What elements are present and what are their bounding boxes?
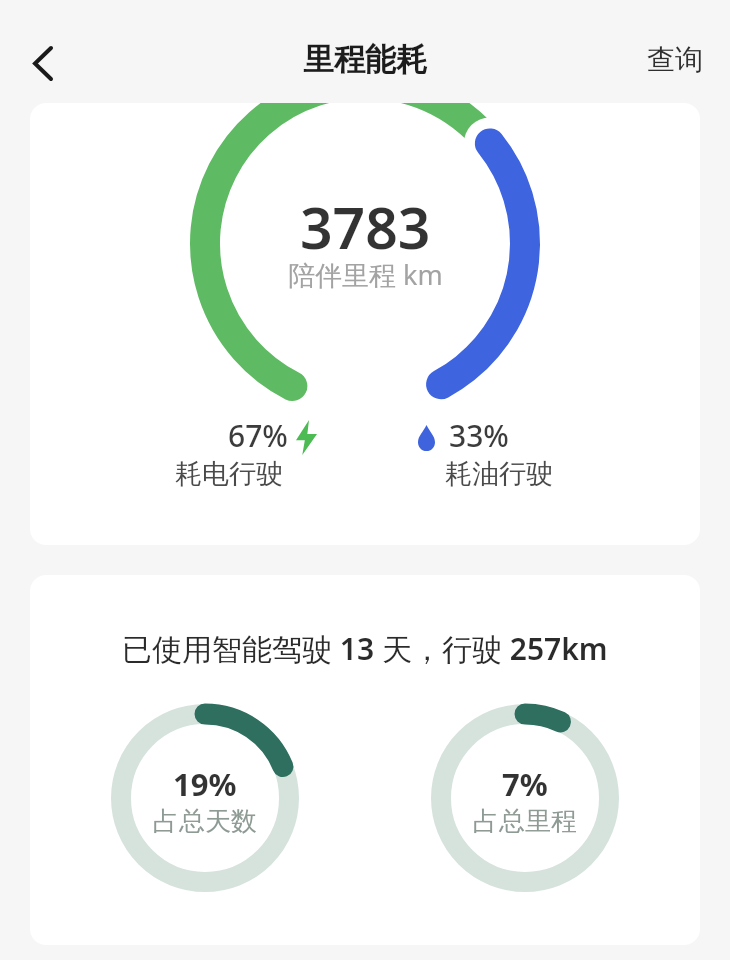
staticText: 陪伴里程 km [288, 256, 443, 293]
staticText: 耗电行驶 [175, 457, 283, 491]
staticText: 占总里程 [473, 805, 577, 838]
button[interactable] [21, 41, 65, 85]
staticText: 耗油行驶 [445, 457, 553, 491]
staticText: 33% [449, 415, 509, 456]
staticText: 67% [228, 415, 288, 456]
staticText: 3783 [300, 188, 431, 266]
staticText: 里程能耗 [303, 40, 427, 79]
staticText: 占总天数 [153, 805, 257, 838]
button[interactable]: 查询 [647, 42, 703, 77]
staticText: 7% [502, 763, 548, 805]
staticText: 19% [173, 763, 237, 805]
staticText: 已使用智能驾驶 13 天，行驶 257km [122, 628, 608, 669]
staticText: 查询 [647, 42, 703, 77]
